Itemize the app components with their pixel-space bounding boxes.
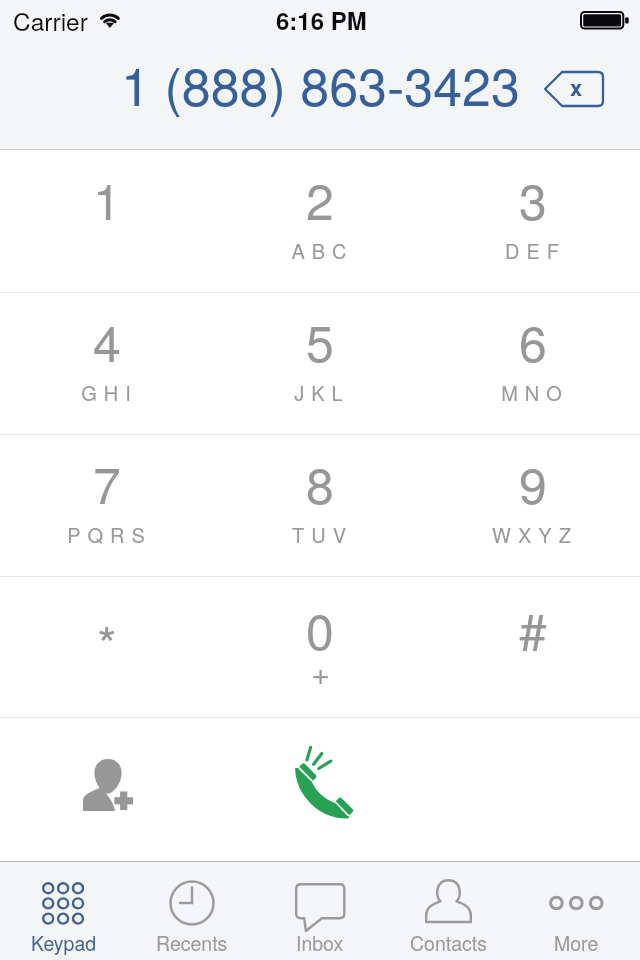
staticText: Keypad — [31, 929, 97, 957]
staticText: JKL — [294, 378, 350, 407]
button[interactable]: Call — [213, 718, 427, 861]
staticText: MNO — [501, 378, 569, 407]
staticText: # — [519, 593, 547, 665]
staticText: 8 — [306, 447, 334, 519]
staticText: 5 — [306, 305, 334, 377]
staticText: 4 — [93, 305, 121, 377]
staticText: 9 — [519, 447, 547, 519]
staticText: 7 — [93, 447, 121, 519]
staticText: 0 — [306, 593, 334, 665]
button[interactable]: Inbox — [256, 862, 384, 960]
button[interactable]: 2 — [213, 150, 427, 292]
staticText: 6 — [519, 305, 547, 377]
button[interactable]: More — [512, 862, 640, 960]
staticText: 2 — [306, 163, 334, 235]
button[interactable]: Keypad — [0, 862, 128, 960]
staticText: GHI — [81, 378, 138, 407]
staticText: More — [554, 929, 599, 957]
staticText: 1 (888) 863-3423 — [121, 46, 520, 120]
staticText: Carrier — [13, 3, 88, 38]
staticText: PQRS — [67, 520, 152, 549]
button[interactable]: * — [0, 576, 214, 718]
staticText: DEF — [505, 236, 566, 265]
button[interactable]: Recents — [128, 862, 256, 960]
staticText: 3 — [519, 163, 547, 235]
staticText: + — [311, 648, 330, 694]
button[interactable]: 3 — [426, 150, 640, 292]
staticText: WXYZ — [492, 520, 578, 549]
button[interactable]: 8 — [213, 434, 427, 576]
button[interactable]: 6 — [426, 292, 640, 434]
staticText: TUV — [292, 520, 353, 549]
staticText: * — [97, 606, 117, 678]
button[interactable]: 4 — [0, 292, 214, 434]
button[interactable]: 5 — [213, 292, 427, 434]
staticText: 1 — [93, 163, 121, 235]
button[interactable]: 7 — [0, 434, 214, 576]
button[interactable]: 0 — [213, 576, 427, 718]
button[interactable]: 1 — [0, 150, 214, 292]
button[interactable]: Add contact — [0, 718, 213, 861]
staticText: 6:16 PM — [276, 3, 367, 37]
staticText: Inbox — [296, 929, 344, 957]
button[interactable]: # — [426, 576, 640, 718]
staticText: ABC — [291, 236, 354, 265]
staticText: x — [570, 71, 583, 103]
staticText: Contacts — [410, 929, 487, 957]
button[interactable]: Delete — [533, 60, 615, 118]
button[interactable]: 9 — [426, 434, 640, 576]
button[interactable]: Contacts — [384, 862, 512, 960]
staticText: Recents — [156, 929, 228, 957]
